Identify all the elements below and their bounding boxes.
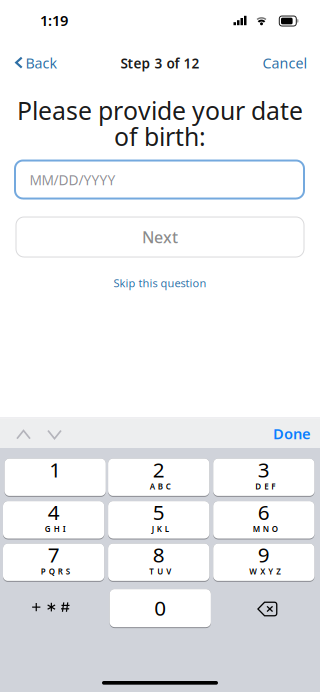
button[interactable]: Delete <box>215 590 316 628</box>
button[interactable]: 3 <box>215 459 316 496</box>
button[interactable]: Skip this question <box>16 274 304 292</box>
button[interactable]: 1 <box>4 459 106 496</box>
staticText: Step 3 of 12 <box>120 54 199 72</box>
button[interactable]: Next field <box>39 418 70 448</box>
staticText: 2 <box>153 455 165 483</box>
staticText: 7 <box>48 540 60 568</box>
button[interactable]: Done <box>262 418 320 448</box>
button[interactable]: 9 <box>215 544 316 581</box>
staticText: PQRS <box>41 566 70 577</box>
button[interactable]: 7 <box>4 544 106 581</box>
staticText: DEF <box>255 481 275 492</box>
staticText: 1:19 <box>40 10 68 30</box>
staticText: 3 <box>258 455 270 483</box>
button[interactable]: 6 <box>215 502 316 539</box>
staticText: Skip this question <box>113 275 206 291</box>
button[interactable]: Back <box>8 49 68 77</box>
button[interactable]: 5 <box>110 502 211 539</box>
staticText: TUV <box>149 566 171 577</box>
staticText: 5 <box>153 498 165 526</box>
staticText: 1 <box>49 455 61 483</box>
button[interactable]: Symbols <box>4 590 106 628</box>
staticText: Done <box>273 424 311 444</box>
staticText: 8 <box>153 540 165 568</box>
staticText: 4 <box>48 498 60 526</box>
staticText: 0 <box>154 594 166 622</box>
button[interactable]: Previous field <box>8 418 39 448</box>
staticText: MNO <box>253 524 278 534</box>
staticText: 6 <box>258 498 270 526</box>
staticText: of birth: <box>114 119 206 153</box>
staticText: JKL <box>152 524 169 534</box>
staticText: Next <box>142 226 178 248</box>
button[interactable]: 2 <box>110 459 211 496</box>
staticText: Back <box>26 53 58 73</box>
button[interactable]: MM/DD/YYYY <box>15 160 304 198</box>
staticText: Please provide your date <box>17 93 303 127</box>
button[interactable]: 8 <box>110 544 211 581</box>
staticText: GHI <box>45 524 66 534</box>
button[interactable]: Next <box>16 217 304 257</box>
staticText: MM/DD/YYYY <box>29 170 115 189</box>
staticText: ABC <box>150 481 171 492</box>
button[interactable]: 0 <box>110 590 211 628</box>
staticText: 9 <box>258 540 270 568</box>
staticText: WXYZ <box>249 566 281 577</box>
button[interactable]: Cancel <box>256 49 312 77</box>
staticText: Cancel <box>262 53 307 73</box>
button[interactable]: 4 <box>4 502 106 539</box>
